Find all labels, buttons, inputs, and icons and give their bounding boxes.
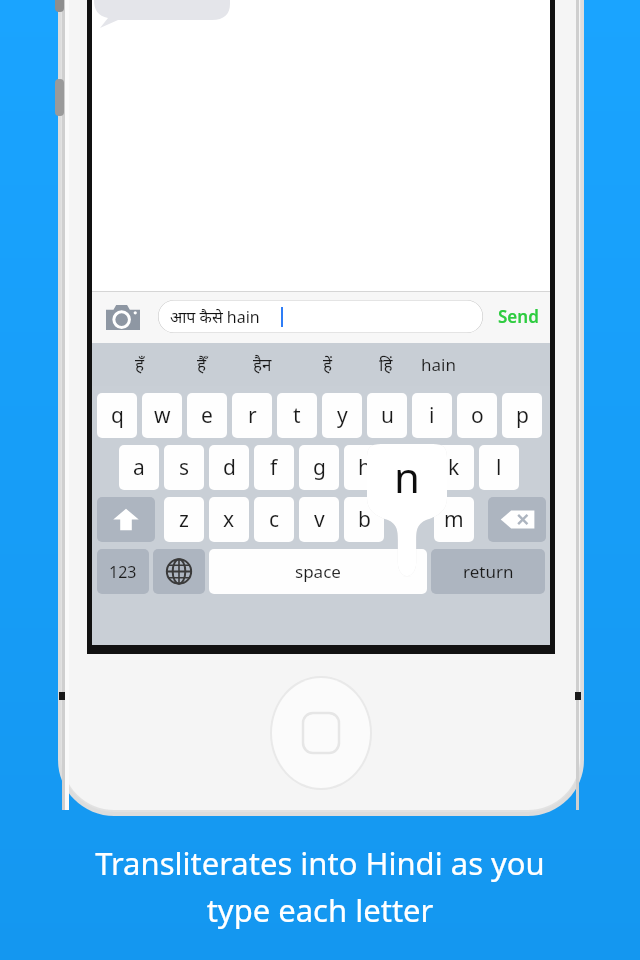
staticText: 123 bbox=[109, 561, 137, 583]
staticText: m bbox=[444, 505, 464, 534]
button[interactable]: हिं bbox=[358, 343, 414, 386]
button[interactable]: h bbox=[344, 445, 384, 490]
button[interactable]: Send bbox=[490, 300, 546, 333]
button[interactable]: w bbox=[142, 393, 182, 438]
button[interactable]: 123 bbox=[97, 549, 149, 594]
staticText: x bbox=[223, 505, 235, 534]
staticText: return bbox=[463, 560, 514, 583]
button[interactable]: l bbox=[479, 445, 519, 490]
button[interactable]: Backspace bbox=[488, 497, 546, 542]
staticText: r bbox=[248, 401, 257, 430]
button[interactable]: हें bbox=[300, 343, 356, 386]
button[interactable]: u bbox=[367, 393, 407, 438]
button[interactable]: p bbox=[502, 393, 542, 438]
staticText: p bbox=[516, 401, 529, 430]
button[interactable]: t bbox=[277, 393, 317, 438]
button[interactable]: हँ bbox=[112, 343, 168, 386]
staticText: w bbox=[154, 401, 171, 430]
staticText: b bbox=[358, 505, 371, 534]
staticText: s bbox=[179, 453, 190, 482]
button[interactable]: k bbox=[434, 445, 474, 490]
staticText: हें bbox=[323, 353, 333, 376]
button[interactable]: return bbox=[431, 549, 545, 594]
button[interactable]: हैन bbox=[234, 343, 290, 386]
button[interactable]: r bbox=[232, 393, 272, 438]
button[interactable]: z bbox=[164, 497, 204, 542]
staticText: i bbox=[429, 401, 435, 430]
staticText: d bbox=[223, 453, 236, 482]
staticText: n bbox=[394, 448, 420, 505]
button[interactable]: Switch keyboard bbox=[153, 549, 205, 594]
staticText: h bbox=[358, 453, 371, 482]
button[interactable]: i bbox=[412, 393, 452, 438]
staticText: f bbox=[270, 453, 278, 482]
button[interactable]: a bbox=[119, 445, 159, 490]
button[interactable]: e bbox=[187, 393, 227, 438]
staticText: g bbox=[313, 453, 326, 482]
button[interactable]: hain bbox=[410, 343, 466, 386]
button[interactable]: c bbox=[254, 497, 294, 542]
button[interactable]: x bbox=[209, 497, 249, 542]
button[interactable]: s bbox=[164, 445, 204, 490]
staticText: आप कैसे hain bbox=[170, 306, 260, 328]
button[interactable]: d bbox=[209, 445, 249, 490]
button[interactable]: o bbox=[457, 393, 497, 438]
staticText: z bbox=[179, 505, 189, 534]
staticText: k bbox=[448, 453, 460, 482]
button[interactable]: हैँ bbox=[174, 343, 230, 386]
staticText: हैन bbox=[253, 353, 272, 376]
staticText: Transliterates into Hindi as you type ea… bbox=[20, 842, 620, 952]
button[interactable]: Shift bbox=[97, 497, 155, 542]
staticText: y bbox=[337, 401, 348, 430]
staticText: हिं bbox=[379, 353, 393, 376]
button[interactable]: m bbox=[434, 497, 474, 542]
button[interactable]: space bbox=[209, 549, 427, 594]
staticText: a bbox=[133, 453, 145, 482]
staticText: हैँ bbox=[197, 353, 207, 376]
button[interactable]: q bbox=[97, 393, 137, 438]
button[interactable]: f bbox=[254, 445, 294, 490]
staticText: u bbox=[381, 401, 394, 430]
button[interactable]: आप कैसे hain bbox=[158, 300, 483, 333]
button[interactable]: g bbox=[299, 445, 339, 490]
staticText: hain bbox=[421, 353, 456, 376]
staticText: Send bbox=[498, 305, 539, 328]
staticText: हँ bbox=[135, 353, 145, 376]
button[interactable]: v bbox=[299, 497, 339, 542]
staticText: c bbox=[269, 505, 280, 534]
staticText: q bbox=[111, 401, 124, 430]
staticText: o bbox=[471, 401, 484, 430]
button[interactable]: y bbox=[322, 393, 362, 438]
staticText: l bbox=[496, 453, 502, 482]
button[interactable]: b bbox=[344, 497, 384, 542]
staticText: e bbox=[201, 401, 213, 430]
staticText: t bbox=[293, 401, 301, 430]
button[interactable]: Camera bbox=[106, 304, 140, 330]
staticText: space bbox=[295, 560, 341, 583]
staticText: v bbox=[314, 505, 325, 534]
